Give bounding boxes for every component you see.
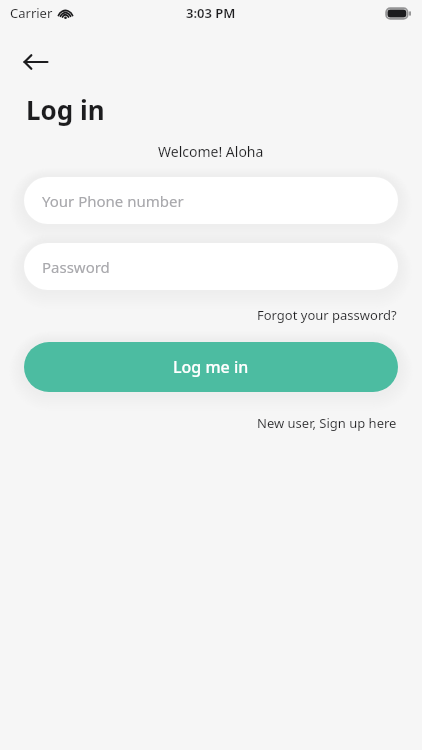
staticText: New user, Sign up here [257,414,397,432]
button[interactable]: Back [14,40,58,84]
staticText: Log in [26,92,105,127]
button[interactable]: Forgot your password? [257,304,422,326]
button[interactable]: Password [24,243,398,290]
staticText: Password [42,257,110,277]
staticText: Carrier [10,4,53,22]
staticText: Log me in [173,356,249,378]
staticText: Forgot your password? [257,306,397,324]
button[interactable]: Your Phone number [24,177,398,224]
staticText: 3:03 PM [186,4,236,22]
staticText: Your Phone number [42,191,184,211]
button[interactable]: Log me in [24,342,398,392]
button[interactable]: New user, Sign up here [257,412,422,434]
staticText: Welcome! Aloha [158,142,264,161]
